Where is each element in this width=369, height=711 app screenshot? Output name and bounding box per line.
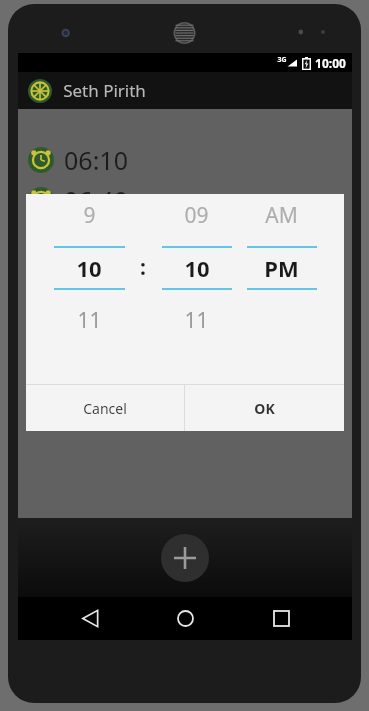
button[interactable]: 09 [154,194,239,340]
staticText: 3G [277,55,287,65]
staticText: 06:10 [64,143,128,177]
staticText: Cancel [83,399,127,418]
staticText: OK [254,399,275,418]
button[interactable]: Seth Pirith [18,72,352,109]
staticText: 10:00 [315,55,346,71]
button[interactable]: Back [66,597,114,640]
button[interactable]: 06:10 [18,140,352,180]
button[interactable]: Add alarm [161,534,209,582]
button[interactable]: 07:10 [18,220,352,260]
button[interactable]: Recent apps [257,597,305,640]
button[interactable]: AM [239,194,324,340]
staticText: 09 [184,201,209,230]
staticText: Seth Pirith [63,79,146,102]
staticText: 10 [184,253,210,283]
staticText: AM [265,201,298,230]
staticText: 9 [83,201,96,230]
staticText: 07:10 [64,223,128,257]
button[interactable]: OK [185,385,344,431]
staticText: 06:40 [64,183,128,217]
staticText: 11 [77,306,102,335]
staticText: : [140,253,146,282]
staticText: 11 [184,306,209,335]
button[interactable]: Cancel [26,385,184,431]
button[interactable]: Home [161,597,209,640]
staticText: PM [264,253,299,283]
button[interactable]: 9 [46,194,132,340]
staticText: 10 [76,253,102,283]
button[interactable]: 06:40 [18,180,352,220]
